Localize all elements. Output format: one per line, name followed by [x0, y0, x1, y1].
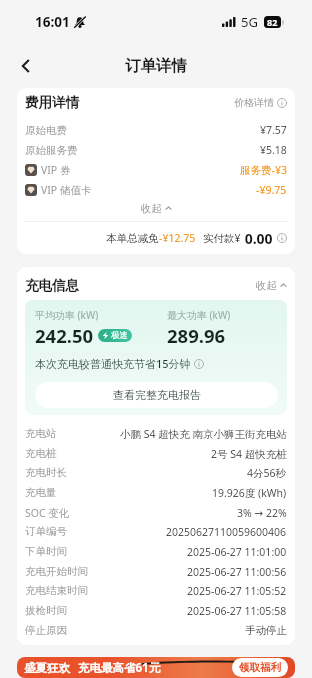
staticText: 手动停止 — [245, 624, 287, 637]
button[interactable]: 盛夏狂欢 — [17, 657, 295, 678]
staticText: 16:01 — [35, 13, 70, 31]
staticText: 82 — [267, 16, 278, 28]
button[interactable]: 查看完整充电报告 — [35, 382, 278, 408]
staticText: 查看完整充电报告 — [113, 388, 201, 402]
staticText: 2025-06-27 11:05:58 — [187, 604, 287, 618]
staticText: 充电时长 — [25, 466, 67, 479]
staticText: VIP 储值卡 — [41, 183, 92, 197]
staticText: VIP 券 — [41, 163, 71, 177]
staticText: 19.926度 (kWh) — [212, 486, 287, 500]
staticText: 242.50 — [35, 323, 94, 348]
button[interactable]: Back — [8, 48, 44, 84]
staticText: 2025-06-27 11:01:00 — [187, 545, 287, 559]
staticText: 下单时间 — [25, 545, 67, 558]
staticText: 价格详情 — [234, 96, 274, 109]
staticText: 2025-06-27 11:00:56 — [187, 565, 287, 579]
staticText: 2025-06-27 11:05:52 — [187, 584, 287, 598]
staticText: 289.96 — [167, 323, 226, 348]
staticText: 充电开始时间 — [25, 565, 88, 578]
staticText: 收起 — [141, 202, 162, 215]
staticText: 极速 — [111, 330, 128, 341]
staticText: 3% → 22% — [237, 506, 287, 520]
staticText: 服务费-¥3 — [240, 163, 287, 177]
staticText: 领取福利 — [239, 661, 281, 674]
staticText: 本次充电较普通快充节省15分钟 — [35, 356, 191, 371]
staticText: 20250627110059600406 — [166, 525, 287, 539]
staticText: 充电桩 — [25, 447, 57, 460]
staticText: ¥5.18 — [260, 143, 287, 157]
staticText: 原始服务费 — [25, 144, 78, 157]
staticText: SOC 变化 — [25, 506, 70, 520]
staticText: 费用详情 — [25, 94, 79, 111]
staticText: 0.00 — [241, 229, 273, 248]
staticText: 2号 S4 超快充桩 — [211, 447, 287, 461]
staticText: 收起 — [256, 279, 277, 292]
button[interactable]: 收起 — [256, 279, 287, 292]
staticText: 最大功率 (kW) — [167, 308, 231, 322]
staticText: ¥7.57 — [260, 123, 287, 137]
staticText: 拔枪时间 — [25, 604, 67, 617]
staticText: 平均功率 (kW) — [35, 308, 99, 322]
staticText: 充电站 — [25, 427, 57, 440]
staticText: 原始电费 — [25, 124, 67, 137]
staticText: 4分56秒 — [247, 466, 287, 480]
staticText: 充电量 — [25, 486, 57, 499]
staticText: 小鹏 S4 超快充 南京小狮王街充电站 — [120, 427, 287, 441]
staticText: 订单详情 — [125, 56, 187, 76]
staticText: 盛夏狂欢 — [24, 661, 70, 675]
staticText: -¥9.75 — [256, 183, 287, 197]
staticText: 停止原因 — [25, 624, 67, 637]
button[interactable]: 价格详情 — [234, 96, 287, 109]
staticText: 5G — [241, 13, 258, 31]
staticText: 实付款¥ — [203, 231, 241, 245]
staticText: 充电最高省61元 — [78, 660, 161, 676]
staticText: 充电信息 — [25, 277, 79, 294]
staticText: -¥12.75 — [159, 231, 196, 245]
button[interactable]: 收起 — [25, 200, 287, 216]
staticText: 订单编号 — [25, 525, 67, 538]
staticText: 本单总减免 — [106, 232, 159, 245]
staticText: 充电结束时间 — [25, 584, 88, 597]
